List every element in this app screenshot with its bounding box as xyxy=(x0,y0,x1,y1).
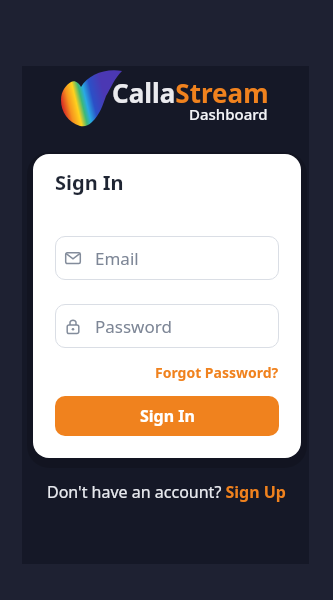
staticText: Sign In xyxy=(55,169,124,196)
button[interactable]: Password xyxy=(55,304,279,348)
staticText: Password xyxy=(95,315,172,338)
button[interactable]: Sign In xyxy=(55,396,279,436)
staticText: CallaStream xyxy=(112,75,269,110)
staticText: Dashboard xyxy=(189,104,268,124)
button[interactable]: Don't have an account? Sign Up xyxy=(47,481,286,503)
staticText: Email xyxy=(95,247,139,270)
button[interactable]: Forgot Password? xyxy=(155,363,279,382)
button[interactable]: Email xyxy=(55,236,279,280)
staticText: Sign In xyxy=(140,405,195,427)
